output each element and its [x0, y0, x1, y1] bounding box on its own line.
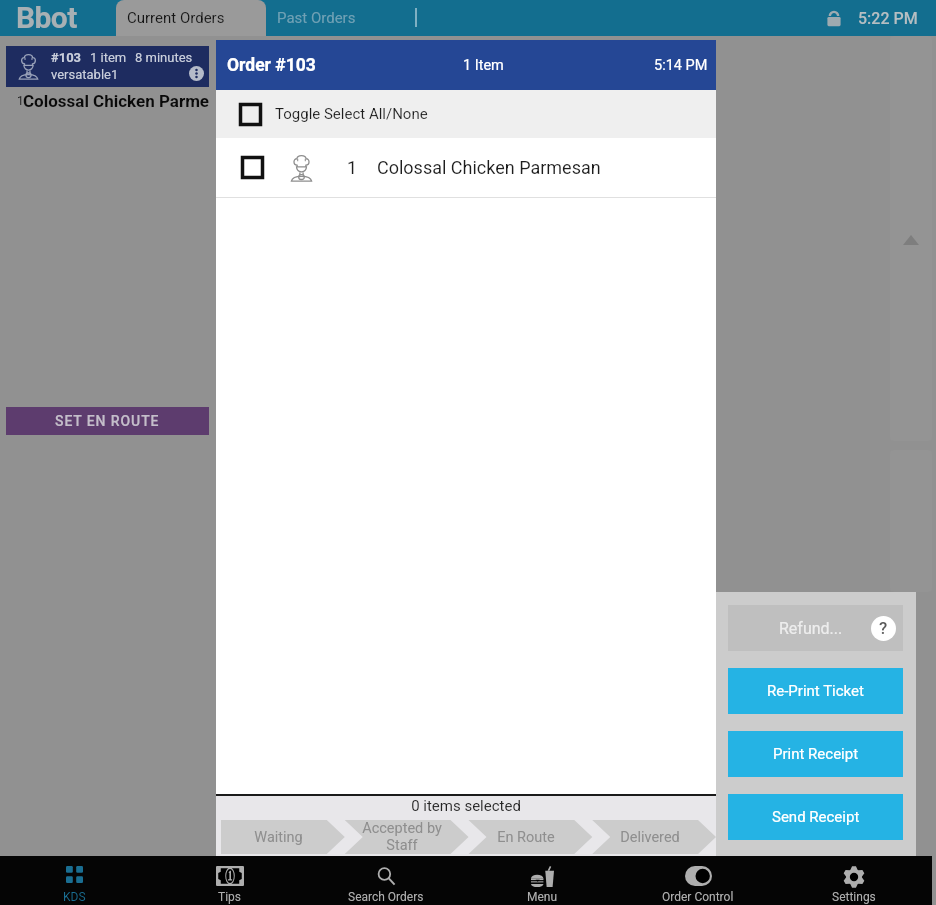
button[interactable]: En Route	[468, 820, 592, 854]
staticText: 0 items selected	[216, 797, 716, 815]
button[interactable]: Toggle Select All/None	[216, 90, 716, 138]
button[interactable]: Order Control	[620, 856, 776, 905]
staticText: Colossal Chicken Parmesan	[377, 157, 601, 178]
button[interactable]: Refund help	[871, 616, 896, 641]
staticText: Tips	[218, 890, 242, 904]
staticText: En Route	[497, 829, 555, 846]
staticText: Waiting	[254, 829, 303, 846]
staticText: Send Receipt	[772, 808, 860, 826]
staticText: Colossal Chicken Parmesan	[23, 91, 209, 111]
staticText: Order #103	[227, 55, 316, 76]
staticText: Order Control	[662, 890, 734, 904]
button[interactable]: Send Receipt	[728, 794, 903, 840]
staticText: Re-Print Ticket	[767, 682, 864, 700]
button[interactable]: Order options	[189, 66, 204, 81]
button[interactable]: #103	[6, 46, 209, 87]
staticText: Refund...	[779, 619, 843, 638]
button[interactable]: Re-Print Ticket	[728, 668, 903, 714]
staticText: 8 minutes	[135, 50, 193, 65]
button[interactable]: SET EN ROUTE	[6, 407, 209, 435]
button[interactable]: Tips	[152, 856, 308, 905]
other: Screen lock	[823, 7, 845, 29]
button[interactable]: 1	[216, 138, 716, 197]
button[interactable]: Menu	[464, 856, 620, 905]
staticText: Print Receipt	[773, 745, 859, 763]
staticText: 1	[347, 157, 358, 178]
staticText: Current Orders	[127, 9, 225, 27]
staticText: #103	[51, 50, 82, 65]
staticText: Bbot	[16, 0, 77, 35]
staticText: Delivered	[620, 829, 680, 846]
button[interactable]: Refund...	[728, 605, 903, 651]
button[interactable]: Search Orders	[308, 856, 464, 905]
button[interactable]: Current Orders	[116, 0, 266, 36]
staticText: 1 item	[90, 50, 127, 65]
staticText: Settings	[832, 890, 876, 904]
staticText: Past Orders	[277, 9, 356, 27]
staticText: Search Orders	[348, 890, 424, 904]
button[interactable]: Print Receipt	[728, 731, 903, 777]
button[interactable]: KDS	[0, 856, 152, 905]
staticText: 1	[17, 94, 24, 108]
staticText: versatable1	[51, 67, 119, 82]
staticText: Menu	[527, 890, 558, 904]
staticText: 1 Item	[463, 57, 504, 74]
staticText: KDS	[63, 890, 86, 904]
button[interactable]: Settings	[776, 856, 932, 905]
staticText: Toggle Select All/None	[275, 105, 428, 123]
button[interactable]: Delivered	[592, 820, 716, 854]
button[interactable]: Accepted by Staff	[344, 820, 468, 854]
staticText: SET EN ROUTE	[55, 413, 160, 429]
button[interactable]: Past Orders	[266, 0, 416, 36]
staticText: 5:14 PM	[654, 57, 708, 74]
button[interactable]: Waiting	[221, 820, 344, 854]
staticText: Accepted by Staff	[362, 820, 442, 854]
staticText: ?	[879, 618, 888, 638]
staticText: 5:22 PM	[858, 9, 918, 28]
